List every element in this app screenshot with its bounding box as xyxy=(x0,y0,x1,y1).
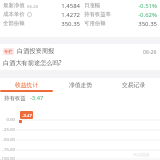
staticText: -0.51% xyxy=(120,2,157,10)
staticText: 全部份额 xyxy=(3,20,25,27)
staticText: 白酒大有前途怎么吗? xyxy=(3,58,62,66)
staticText: 白酒投资周报 xyxy=(17,47,55,55)
staticText: 成本单价 xyxy=(3,11,25,18)
button[interactable]: 净值走势 xyxy=(54,78,107,90)
button[interactable]: 白酒大有前途怎么吗? xyxy=(0,56,160,68)
button[interactable]: 专栏 xyxy=(0,45,160,57)
staticText: 1.4272 xyxy=(40,11,80,19)
staticText: 净值走势 xyxy=(69,81,93,88)
staticText: 持有收益率 xyxy=(84,11,111,18)
staticText: 日涨幅 xyxy=(84,2,101,9)
staticText: 可用份额 xyxy=(84,20,106,27)
button[interactable]: 交易记录 xyxy=(107,78,160,90)
staticText: 0.00 xyxy=(0,116,15,122)
staticText: -25.00 xyxy=(0,126,15,132)
staticText: -100.00 xyxy=(0,155,15,160)
staticText: -50.00 xyxy=(0,136,15,142)
staticText: 350.35 xyxy=(40,20,80,28)
staticText: -3.47 xyxy=(22,112,32,118)
other: Info xyxy=(27,12,32,17)
staticText: -75.00 xyxy=(0,146,15,152)
staticText: 1.4584 xyxy=(40,2,80,10)
staticText: 06-26 xyxy=(27,3,39,9)
staticText: 收益统计 xyxy=(15,81,39,88)
staticText: 06-26 xyxy=(143,48,157,55)
staticText: 持有收益 xyxy=(4,95,26,102)
staticText: 交易记录 xyxy=(122,81,146,88)
staticText: 最新净值 xyxy=(3,2,25,9)
button[interactable]: 收益统计 xyxy=(0,78,54,90)
staticText: 天天基金 xyxy=(133,152,150,157)
staticText: 专栏 xyxy=(4,49,13,54)
staticText: -0.62% xyxy=(120,11,157,19)
staticText: 350.35 xyxy=(120,20,157,28)
staticText: -3.47 xyxy=(30,94,44,102)
